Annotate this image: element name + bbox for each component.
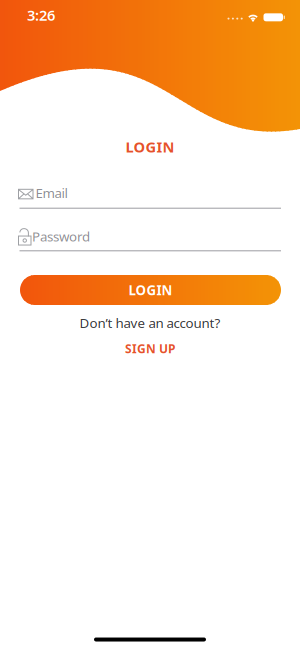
- staticText: Email: [35, 184, 67, 202]
- button[interactable]: Email: [19, 186, 281, 210]
- staticText: LOGIN: [125, 137, 174, 156]
- button[interactable]: Password: [19, 226, 281, 254]
- staticText: LOGIN: [128, 281, 172, 299]
- staticText: 3:26: [27, 5, 55, 25]
- button[interactable]: SIGN UP: [90, 338, 210, 358]
- staticText: SIGN UP: [125, 340, 175, 356]
- button[interactable]: LOGIN: [20, 275, 281, 305]
- staticText: Don’t have an account?: [79, 314, 220, 332]
- staticText: Password: [32, 227, 90, 245]
